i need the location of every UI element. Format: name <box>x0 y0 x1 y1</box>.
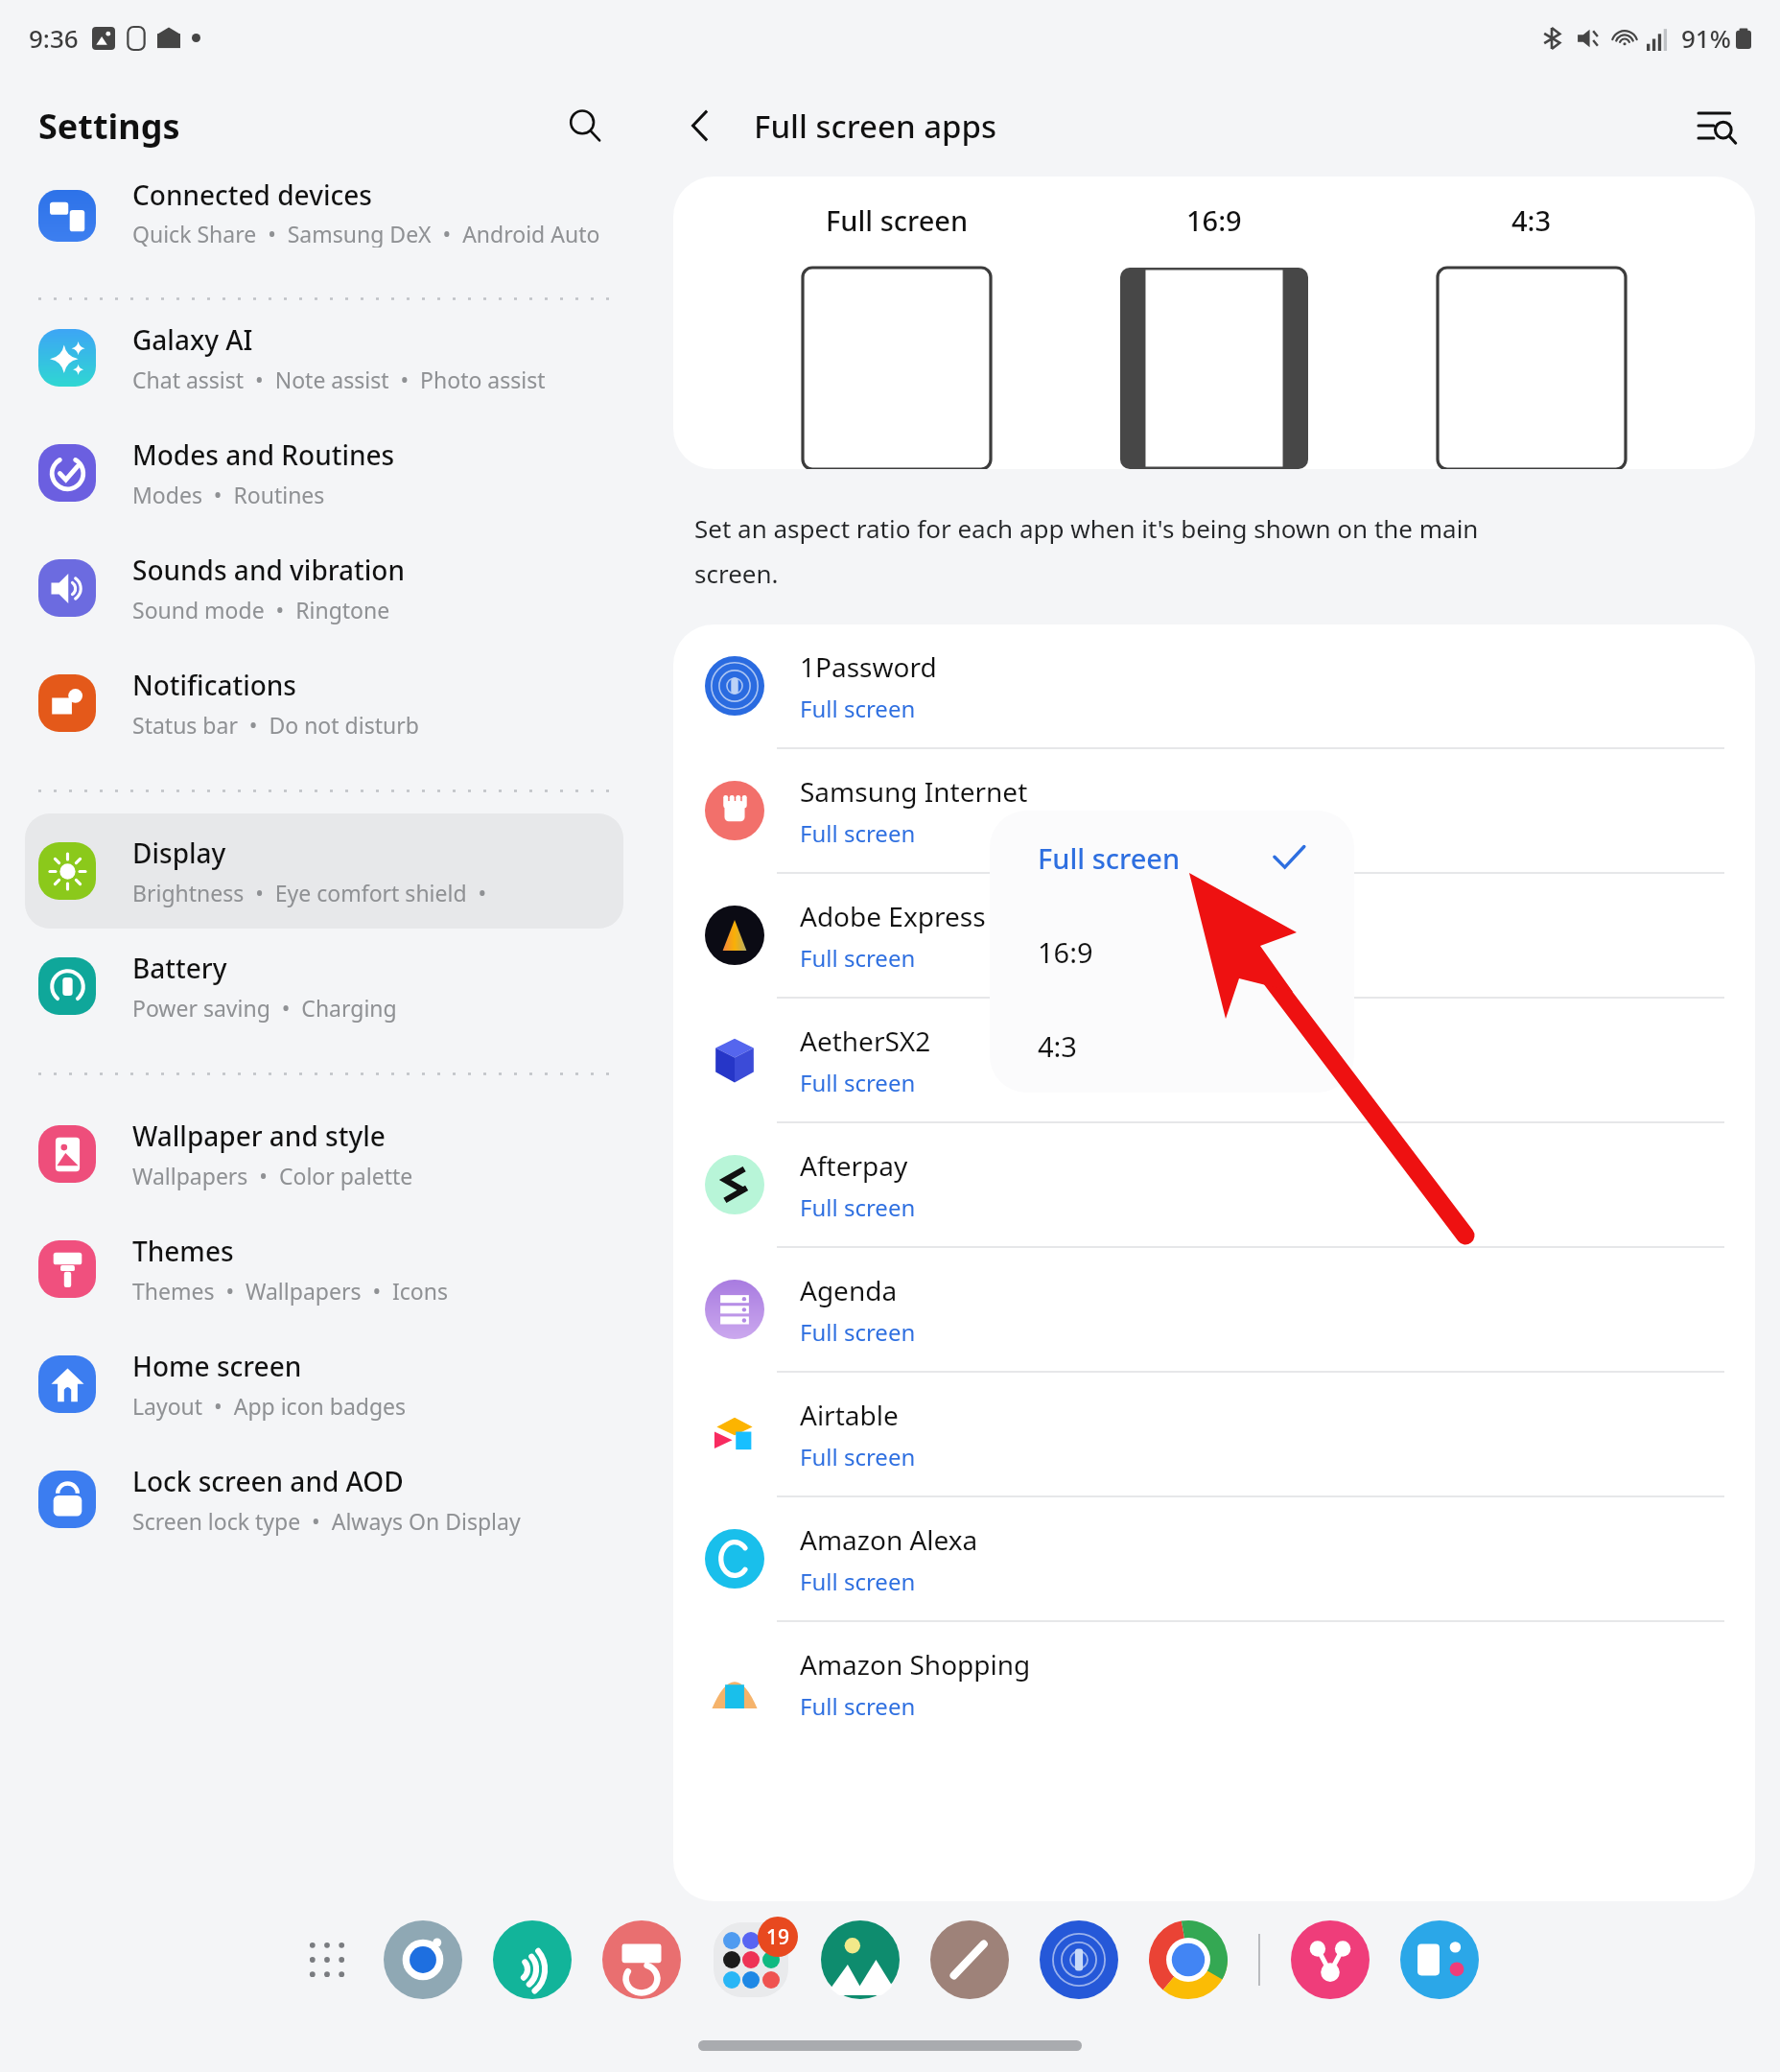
staticText: Wallpapers • Color palette <box>132 1161 413 1190</box>
button[interactable]: Home screen <box>25 1327 623 1442</box>
button[interactable]: Apps <box>286 1919 368 2001</box>
staticText: Full screen <box>800 1191 916 1223</box>
button[interactable]: spotify <box>491 1919 574 2001</box>
button[interactable]: Display <box>25 813 623 929</box>
staticText: Full screen <box>800 817 916 849</box>
staticText: 4:3 <box>1038 1027 1077 1065</box>
button[interactable]: Galaxy AI <box>25 300 623 415</box>
staticText: Full screen <box>800 1566 916 1597</box>
button[interactable]: Samsung Internet <box>673 749 1755 872</box>
button[interactable]: Amazon Alexa <box>673 1497 1755 1620</box>
staticText: Status bar • Do not disturb <box>132 710 419 740</box>
staticText: Themes <box>132 1233 234 1269</box>
button[interactable]: Notifications <box>25 646 623 761</box>
staticText: Layout • App icon badges <box>132 1391 407 1421</box>
button[interactable]: Connected devices <box>0 177 648 247</box>
button[interactable]: gallery <box>819 1919 902 2001</box>
staticText: Full screen <box>800 942 916 974</box>
button[interactable]: Search in list <box>1682 91 1751 160</box>
staticText: Full screen <box>800 693 916 724</box>
staticText: 1Password <box>800 648 937 685</box>
staticText: Notifications <box>132 667 296 703</box>
staticText: Full screen <box>826 201 969 239</box>
button[interactable]: AetherSX2 <box>673 999 1755 1121</box>
staticText: 16:9 <box>1038 933 1093 971</box>
staticText: 16:9 <box>1186 201 1242 239</box>
staticText: Battery <box>132 950 227 986</box>
staticText: Brightness • Eye comfort shield • Naviga… <box>132 878 610 907</box>
staticText: Samsung Internet <box>800 773 1028 810</box>
staticText: Home screen <box>132 1348 302 1384</box>
staticText: Sound mode • Ringtone <box>132 595 390 624</box>
button[interactable]: 1Password <box>673 624 1755 747</box>
staticText: Amazon Shopping <box>800 1646 1031 1683</box>
button[interactable]: smartthings <box>1398 1919 1481 2001</box>
staticText: 4:3 <box>1511 201 1552 239</box>
staticText: AetherSX2 <box>800 1023 931 1059</box>
staticText: Agenda <box>800 1272 898 1308</box>
button[interactable]: 19 <box>710 1919 792 2001</box>
staticText: Modes and Routines <box>132 436 395 473</box>
button[interactable]: chrome <box>1147 1919 1230 2001</box>
staticText: 91% <box>1681 21 1731 55</box>
staticText: Screen lock type • Always On Display <box>132 1506 521 1536</box>
button[interactable]: pink <box>1289 1919 1371 2001</box>
button[interactable]: Afterpay <box>673 1123 1755 1246</box>
button[interactable]: Battery <box>25 929 623 1044</box>
staticText: Full screen <box>800 1067 916 1098</box>
staticText: Themes • Wallpapers • Icons <box>132 1276 448 1306</box>
staticText: Display <box>132 835 226 871</box>
staticText: 19 <box>766 1923 790 1951</box>
button[interactable]: Themes <box>25 1212 623 1327</box>
button[interactable]: Adobe Express <box>673 874 1755 997</box>
button[interactable]: gmail <box>600 1919 683 2001</box>
staticText: Airtable <box>800 1397 899 1433</box>
button[interactable]: Back <box>666 91 735 160</box>
staticText: 9:36 <box>29 21 79 55</box>
staticText: Full screen apps <box>754 105 997 148</box>
staticText: Full screen <box>1038 839 1181 877</box>
button[interactable]: Modes and Routines <box>25 415 623 530</box>
button[interactable]: Agenda <box>673 1248 1755 1371</box>
staticText: Power saving • Charging <box>132 993 397 1023</box>
staticText: Quick Share • Samsung DeX • Android Auto <box>132 219 600 247</box>
staticText: Galaxy AI <box>132 321 253 358</box>
button[interactable]: Amazon Shopping <box>673 1622 1755 1745</box>
staticText: Set an aspect ratio for each app when it… <box>694 511 1479 545</box>
button[interactable]: Wallpaper and style <box>25 1096 623 1212</box>
staticText: Wallpaper and style <box>132 1118 386 1154</box>
staticText: Amazon Alexa <box>800 1521 978 1558</box>
button[interactable]: Lock screen and AOD <box>25 1442 623 1557</box>
button[interactable]: 16:9 <box>990 905 1354 999</box>
staticText: Lock screen and AOD <box>132 1463 404 1499</box>
staticText: Modes • Routines <box>132 480 325 509</box>
staticText: Sounds and vibration <box>132 552 406 588</box>
button[interactable]: Search settings <box>550 91 620 160</box>
staticText: Settings <box>38 103 180 150</box>
staticText: Full screen <box>800 1690 916 1722</box>
button[interactable]: 4:3 <box>990 999 1354 1093</box>
staticText: Afterpay <box>800 1147 908 1184</box>
button[interactable]: notes <box>928 1919 1011 2001</box>
staticText: Chat assist • Note assist • Photo assist <box>132 365 546 394</box>
staticText: screen. <box>694 556 779 590</box>
staticText: Full screen <box>800 1316 916 1348</box>
button[interactable]: onepass <box>1038 1919 1120 2001</box>
staticText: Connected devices <box>132 177 372 213</box>
button[interactable]: camera <box>382 1919 464 2001</box>
button[interactable]: Airtable <box>673 1373 1755 1495</box>
staticText: Full screen <box>800 1441 916 1472</box>
button[interactable]: Full screen <box>990 811 1354 905</box>
button[interactable]: Sounds and vibration <box>25 530 623 646</box>
staticText: Adobe Express <box>800 898 986 934</box>
